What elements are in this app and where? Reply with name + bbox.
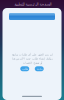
staticText: لم يتم العثور على أي طلبات سابقة (11, 53, 52, 56)
staticText: بحث (36, 67, 42, 70)
staticText: أو تصفح الخدمات (22, 61, 42, 64)
staticText: الصفحة الرئيسية للتطبيق (13, 2, 51, 6)
staticText: يمكنك إنشاء طلب جديد الآن من هنا (11, 57, 52, 60)
button[interactable]: طلب (20, 66, 29, 71)
button[interactable]: بحث (35, 66, 44, 71)
staticText: طلب (22, 67, 28, 70)
